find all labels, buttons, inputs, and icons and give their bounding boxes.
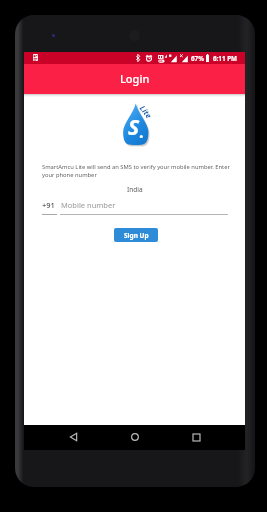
staticText: India [127, 185, 143, 194]
staticText: Login [120, 71, 150, 86]
staticText: 6:11 PM [213, 54, 238, 63]
staticText: Sign Up [124, 231, 149, 240]
staticText: +91 [42, 200, 55, 210]
staticText: . [139, 121, 144, 143]
button[interactable]: India [24, 177, 245, 191]
staticText: Lite [138, 103, 154, 121]
button[interactable]: Sign Up [114, 228, 158, 242]
button[interactable]: Back [63, 427, 83, 447]
button[interactable]: +91 [42, 198, 57, 216]
staticText: S [128, 113, 140, 142]
button[interactable]: Home [125, 427, 145, 447]
staticText: SmartAmcu Lite will send an SMS to verif… [42, 163, 233, 179]
button[interactable]: Mobile number [60, 198, 228, 216]
staticText: Mobile number [61, 200, 116, 210]
button[interactable]: Recent apps [186, 427, 206, 447]
staticText: 67% [191, 54, 204, 63]
